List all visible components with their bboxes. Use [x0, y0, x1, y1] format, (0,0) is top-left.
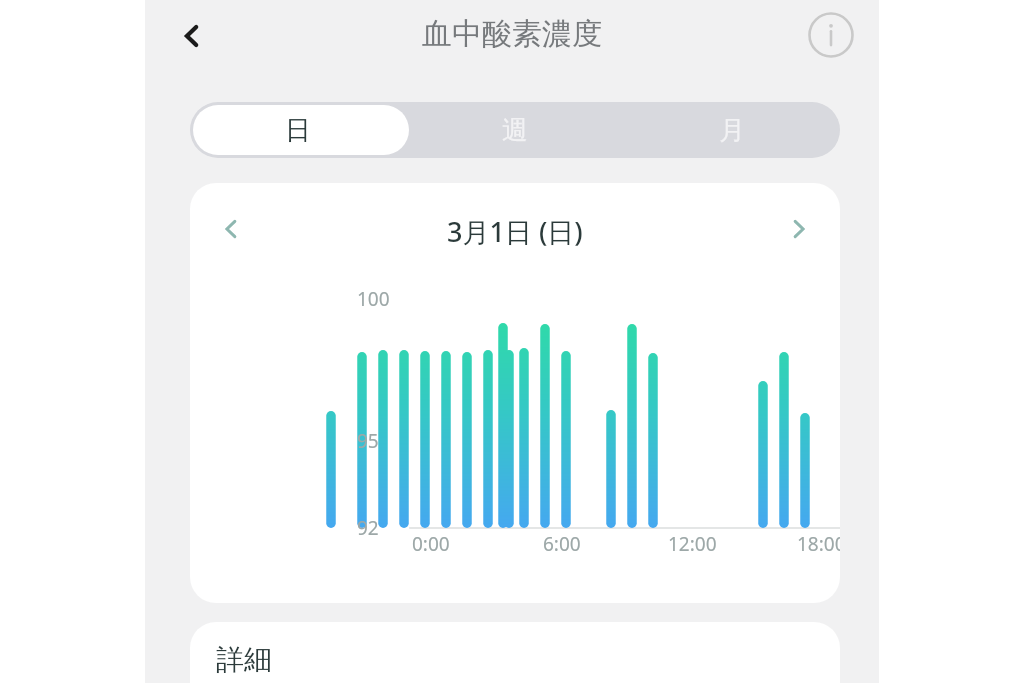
button[interactable]: Information	[805, 9, 857, 61]
staticText: 週	[502, 114, 528, 147]
staticText: 3月1日 (日)	[447, 213, 583, 250]
button[interactable]: Next day	[776, 206, 822, 252]
staticText: 詳細	[216, 642, 272, 677]
button[interactable]: 詳細	[190, 622, 840, 683]
staticText: 95	[357, 428, 379, 454]
staticText: 月	[719, 114, 745, 147]
staticText: 血中酸素濃度	[422, 15, 602, 53]
button[interactable]: 週	[406, 102, 623, 158]
button[interactable]: Previous day	[208, 206, 254, 252]
button[interactable]: 月	[623, 102, 840, 158]
staticText: 12:00	[668, 531, 717, 557]
button[interactable]: 日	[190, 102, 406, 158]
staticText: 6:00	[543, 531, 581, 557]
staticText: 100	[357, 286, 390, 312]
staticText: 18:00	[797, 531, 840, 557]
button[interactable]: Back	[168, 12, 216, 60]
staticText: 92	[357, 515, 379, 541]
staticText: 日	[285, 114, 311, 147]
staticText: 0:00	[412, 531, 450, 557]
